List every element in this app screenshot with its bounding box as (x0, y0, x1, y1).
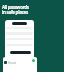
staticText: All passwords in safe places (2, 4, 29, 15)
staticText: Secure (8, 61, 17, 65)
